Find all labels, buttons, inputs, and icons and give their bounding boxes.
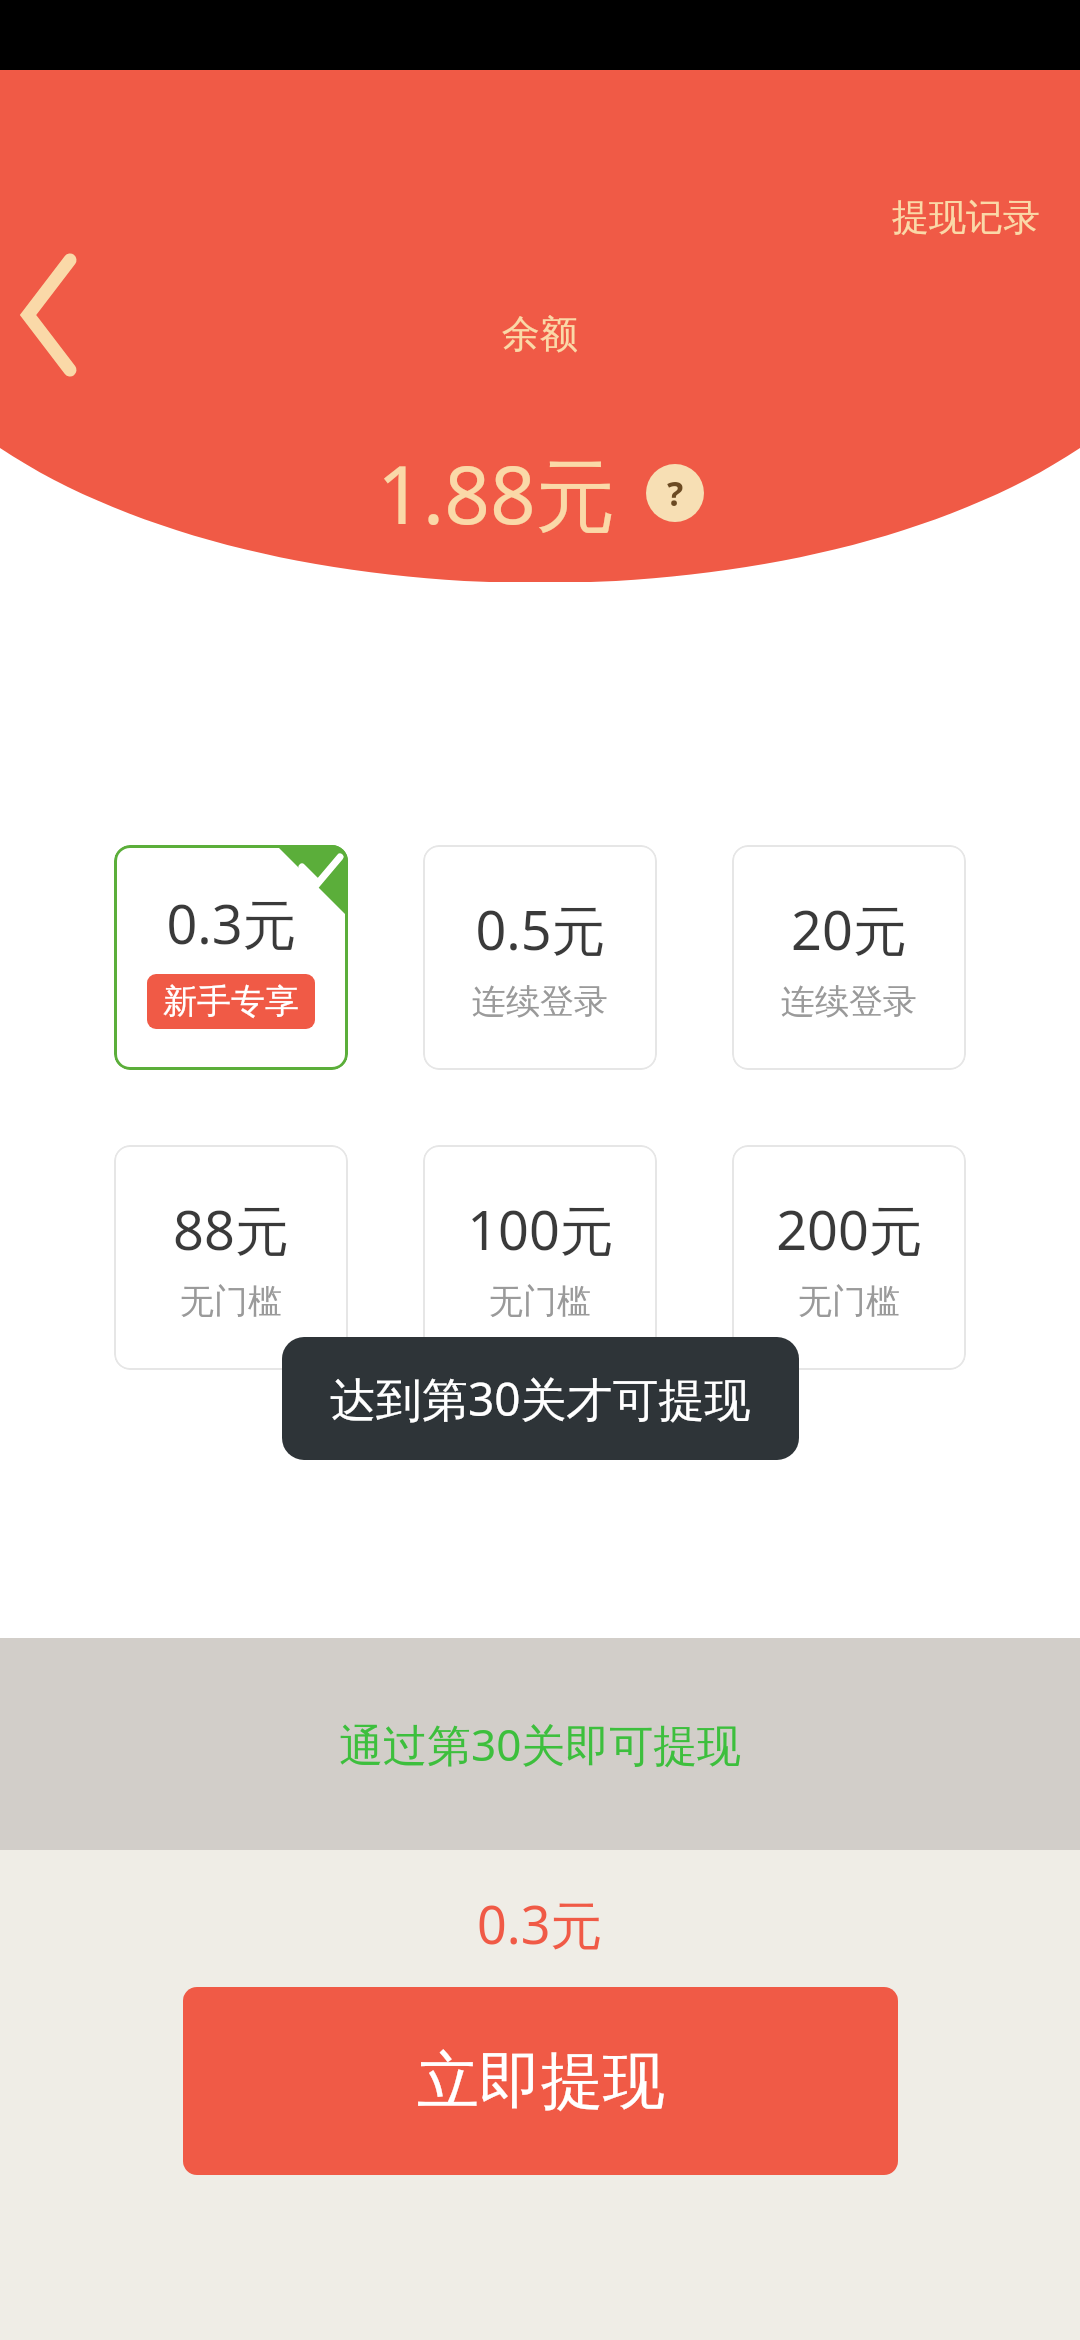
- button[interactable]: 0.3元: [114, 845, 348, 1070]
- button[interactable]: 100元: [423, 1145, 657, 1370]
- staticText: 无门槛: [798, 1280, 900, 1323]
- staticText: 200元: [776, 1192, 923, 1266]
- staticText: 20元: [791, 892, 907, 966]
- staticText: 无门槛: [489, 1280, 591, 1323]
- staticText: 连续登录: [781, 980, 917, 1023]
- staticText: 0.5元: [475, 892, 606, 966]
- staticText: 余额: [502, 310, 578, 358]
- staticText: 0.3元: [477, 1888, 603, 1959]
- button[interactable]: 提现记录: [852, 180, 1080, 255]
- button[interactable]: Help: [646, 464, 704, 522]
- button[interactable]: Back: [8, 180, 128, 300]
- staticText: 连续登录: [472, 980, 608, 1023]
- staticText: 88元: [173, 1192, 289, 1266]
- button[interactable]: 200元: [732, 1145, 966, 1370]
- staticText: 100元: [467, 1192, 614, 1266]
- staticText: 0.3元: [166, 886, 297, 960]
- staticText: 提现记录: [892, 194, 1040, 241]
- staticText: 立即提现: [417, 2042, 665, 2120]
- staticText: 新手专享: [163, 980, 299, 1023]
- staticText: 达到第30关才可提现: [330, 1367, 751, 1430]
- button[interactable]: 20元: [732, 845, 966, 1070]
- staticText: 通过第30关即可提现: [339, 1714, 742, 1774]
- button[interactable]: 立即提现: [183, 1987, 898, 2175]
- button[interactable]: 88元: [114, 1145, 348, 1370]
- staticText: 1.88元: [377, 438, 616, 547]
- button[interactable]: 0.5元: [423, 845, 657, 1070]
- staticText: 无门槛: [180, 1280, 282, 1323]
- staticText: ?: [667, 470, 684, 516]
